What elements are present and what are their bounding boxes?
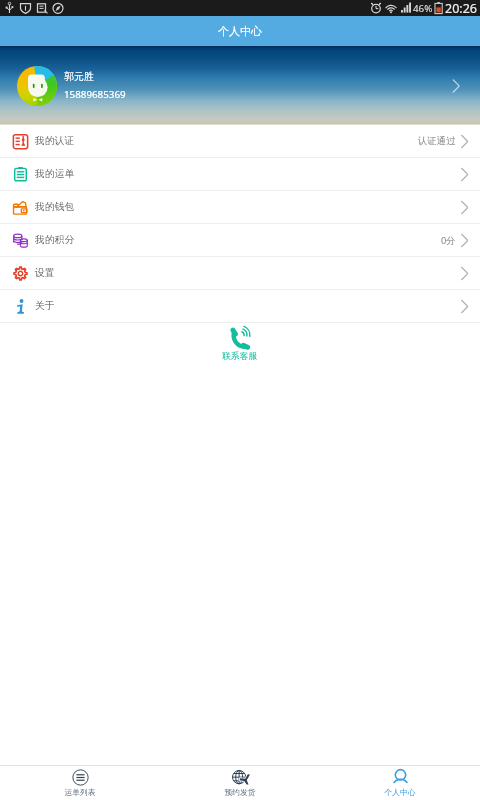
staticText: 关于 [35,300,55,312]
staticText: 运单列表 [64,787,96,797]
staticText: 我的认证 [35,135,75,147]
button[interactable]: 关于 [0,290,480,322]
staticText: 15889685369 [64,88,126,101]
button[interactable]: 个人中心 [320,766,480,800]
button[interactable]: 预约发货 [160,766,320,800]
button[interactable]: 郭元胜 [0,46,480,125]
other: Profile details [452,78,468,94]
button[interactable]: 联系客服 [214,323,266,362]
staticText: 预约发货 [224,787,256,797]
staticText: 46% [413,2,433,15]
staticText: 0分 [441,234,456,247]
button[interactable]: 我的积分 [0,224,480,256]
button[interactable]: 运单列表 [0,766,160,800]
staticText: 设置 [35,267,55,279]
staticText: 个人中心 [218,24,262,38]
staticText: 我的运单 [35,168,75,180]
staticText: 我的钱包 [35,201,75,213]
staticText: 郭元胜 [64,70,94,83]
button[interactable]: 设置 [0,257,480,289]
staticText: 20:26 [445,0,477,16]
button[interactable]: 我的钱包 [0,191,480,223]
staticText: 个人中心 [384,787,416,797]
staticText: 联系客服 [222,351,258,362]
button[interactable]: 我的运单 [0,158,480,190]
button[interactable]: 我的认证 [0,125,480,157]
staticText: 认证通过 [418,135,456,147]
staticText: 我的积分 [35,234,75,246]
